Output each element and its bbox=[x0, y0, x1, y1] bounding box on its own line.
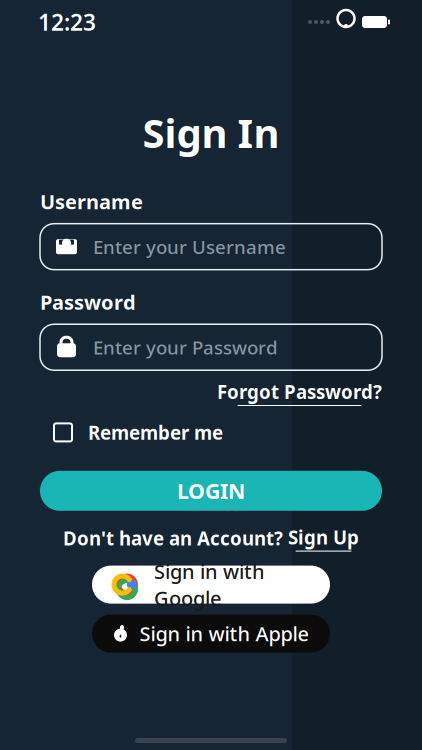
staticText: Enter your Password bbox=[93, 335, 278, 360]
staticText: Sign in with Google bbox=[154, 558, 265, 611]
button[interactable]: Enter your Username bbox=[40, 224, 382, 270]
button[interactable]: Sign in with Apple bbox=[92, 615, 330, 653]
button[interactable]: LOGIN bbox=[40, 471, 382, 511]
button[interactable]: Don't have an Account? bbox=[63, 525, 359, 552]
staticText: LOGIN bbox=[177, 477, 245, 505]
button[interactable]: Remember me bbox=[54, 414, 223, 451]
button[interactable]: Sign in with Google bbox=[92, 566, 330, 604]
staticText: Username bbox=[40, 188, 143, 215]
staticText: Sign In bbox=[142, 106, 279, 159]
staticText: Password bbox=[40, 289, 136, 315]
staticText: Forgot Password? bbox=[217, 379, 382, 404]
button[interactable]: Enter your Password bbox=[40, 324, 382, 370]
staticText: Remember me bbox=[88, 420, 223, 445]
staticText: Sign in with Apple bbox=[139, 620, 308, 647]
button[interactable]: Forgot Password? bbox=[217, 379, 382, 406]
staticText: Don't have an Account? bbox=[63, 526, 283, 551]
staticText: Sign Up bbox=[288, 525, 359, 550]
staticText: Enter your Username bbox=[93, 234, 286, 259]
staticText: 12:23 bbox=[38, 7, 96, 37]
